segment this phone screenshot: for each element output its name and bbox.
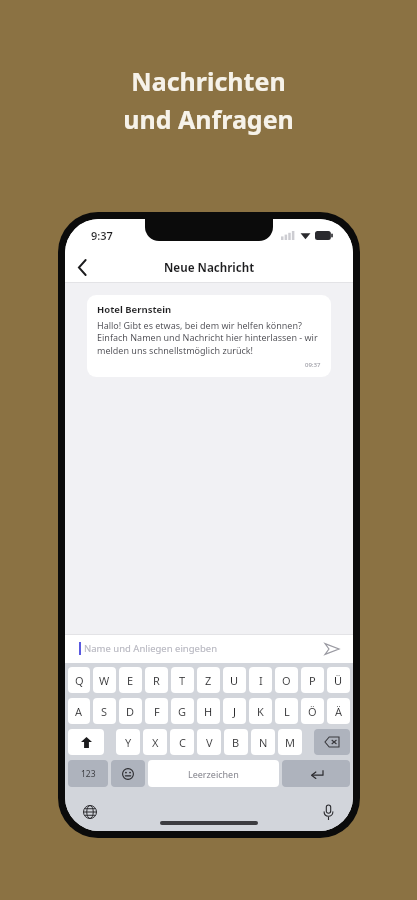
- staticText: L: [284, 704, 290, 719]
- staticText: O: [282, 673, 291, 688]
- button[interactable]: C: [170, 729, 194, 755]
- button[interactable]: I: [249, 667, 272, 693]
- staticText: B: [232, 735, 240, 750]
- staticText: Ü: [334, 673, 343, 688]
- staticText: Q: [75, 673, 84, 688]
- staticText: F: [154, 704, 160, 719]
- staticText: H: [204, 704, 213, 719]
- staticText: Hallo! Gibt es etwas, bei dem wir helfen…: [97, 319, 321, 357]
- button[interactable]: Back: [65, 252, 99, 283]
- staticText: U: [230, 673, 239, 688]
- staticText: E: [127, 673, 134, 688]
- button[interactable]: D: [119, 698, 142, 724]
- staticText: N: [259, 735, 268, 750]
- button[interactable]: Emoji: [111, 760, 145, 787]
- button[interactable]: Ö: [301, 698, 324, 724]
- staticText: Hotel Bernstein: [97, 303, 172, 316]
- staticText: D: [126, 704, 135, 719]
- staticText: W: [99, 673, 110, 688]
- button[interactable]: G: [171, 698, 194, 724]
- button[interactable]: Send: [321, 638, 343, 660]
- button[interactable]: B: [224, 729, 248, 755]
- button[interactable]: V: [197, 729, 221, 755]
- staticText: P: [309, 673, 316, 688]
- staticText: 09:37: [305, 361, 321, 369]
- staticText: G: [178, 704, 187, 719]
- button[interactable]: T: [171, 667, 194, 693]
- button[interactable]: R: [145, 667, 168, 693]
- staticText: T: [179, 673, 186, 688]
- button[interactable]: F: [145, 698, 168, 724]
- button[interactable]: Hotel Bernstein: [87, 295, 331, 377]
- staticText: J: [233, 704, 237, 719]
- button[interactable]: Backspace: [314, 729, 350, 755]
- staticText: V: [206, 735, 213, 750]
- staticText: X: [152, 735, 159, 750]
- staticText: Ö: [308, 704, 317, 719]
- button[interactable]: S: [93, 698, 116, 724]
- button[interactable]: K: [249, 698, 272, 724]
- button[interactable]: Leerzeichen: [148, 760, 279, 787]
- button[interactable]: Ü: [327, 667, 350, 693]
- staticText: S: [101, 704, 108, 719]
- staticText: K: [257, 704, 264, 719]
- button[interactable]: Ä: [327, 698, 350, 724]
- button[interactable]: Dictate: [317, 801, 339, 823]
- button[interactable]: H: [197, 698, 220, 724]
- button[interactable]: Q: [68, 667, 90, 693]
- staticText: Name und Anliegen eingeben: [84, 642, 218, 655]
- staticText: Ä: [335, 704, 343, 719]
- button[interactable]: E: [119, 667, 142, 693]
- button[interactable]: Return: [282, 760, 350, 787]
- staticText: Leerzeichen: [188, 768, 239, 780]
- staticText: 123: [81, 768, 96, 780]
- button[interactable]: M: [278, 729, 302, 755]
- button[interactable]: Name und Anliegen eingeben: [65, 634, 353, 663]
- staticText: und Anfragen: [123, 102, 294, 136]
- staticText: I: [259, 673, 263, 688]
- staticText: Neue Nachricht: [164, 260, 255, 276]
- button[interactable]: N: [251, 729, 275, 755]
- button[interactable]: X: [143, 729, 167, 755]
- button[interactable]: Shift: [68, 729, 104, 755]
- staticText: R: [153, 673, 160, 688]
- button[interactable]: L: [275, 698, 298, 724]
- staticText: C: [179, 735, 186, 750]
- button[interactable]: Change keyboard: [79, 801, 101, 823]
- button[interactable]: A: [68, 698, 90, 724]
- staticText: Z: [205, 673, 212, 688]
- button[interactable]: U: [223, 667, 246, 693]
- staticText: M: [285, 735, 295, 750]
- button[interactable]: W: [93, 667, 116, 693]
- button[interactable]: O: [275, 667, 298, 693]
- staticText: 9:37: [91, 228, 113, 243]
- staticText: Y: [125, 735, 132, 750]
- button[interactable]: 123: [68, 760, 108, 787]
- button[interactable]: Z: [197, 667, 220, 693]
- button[interactable]: Y: [116, 729, 140, 755]
- staticText: A: [75, 704, 83, 719]
- button[interactable]: P: [301, 667, 324, 693]
- staticText: Nachrichten: [131, 64, 286, 98]
- button[interactable]: J: [223, 698, 246, 724]
